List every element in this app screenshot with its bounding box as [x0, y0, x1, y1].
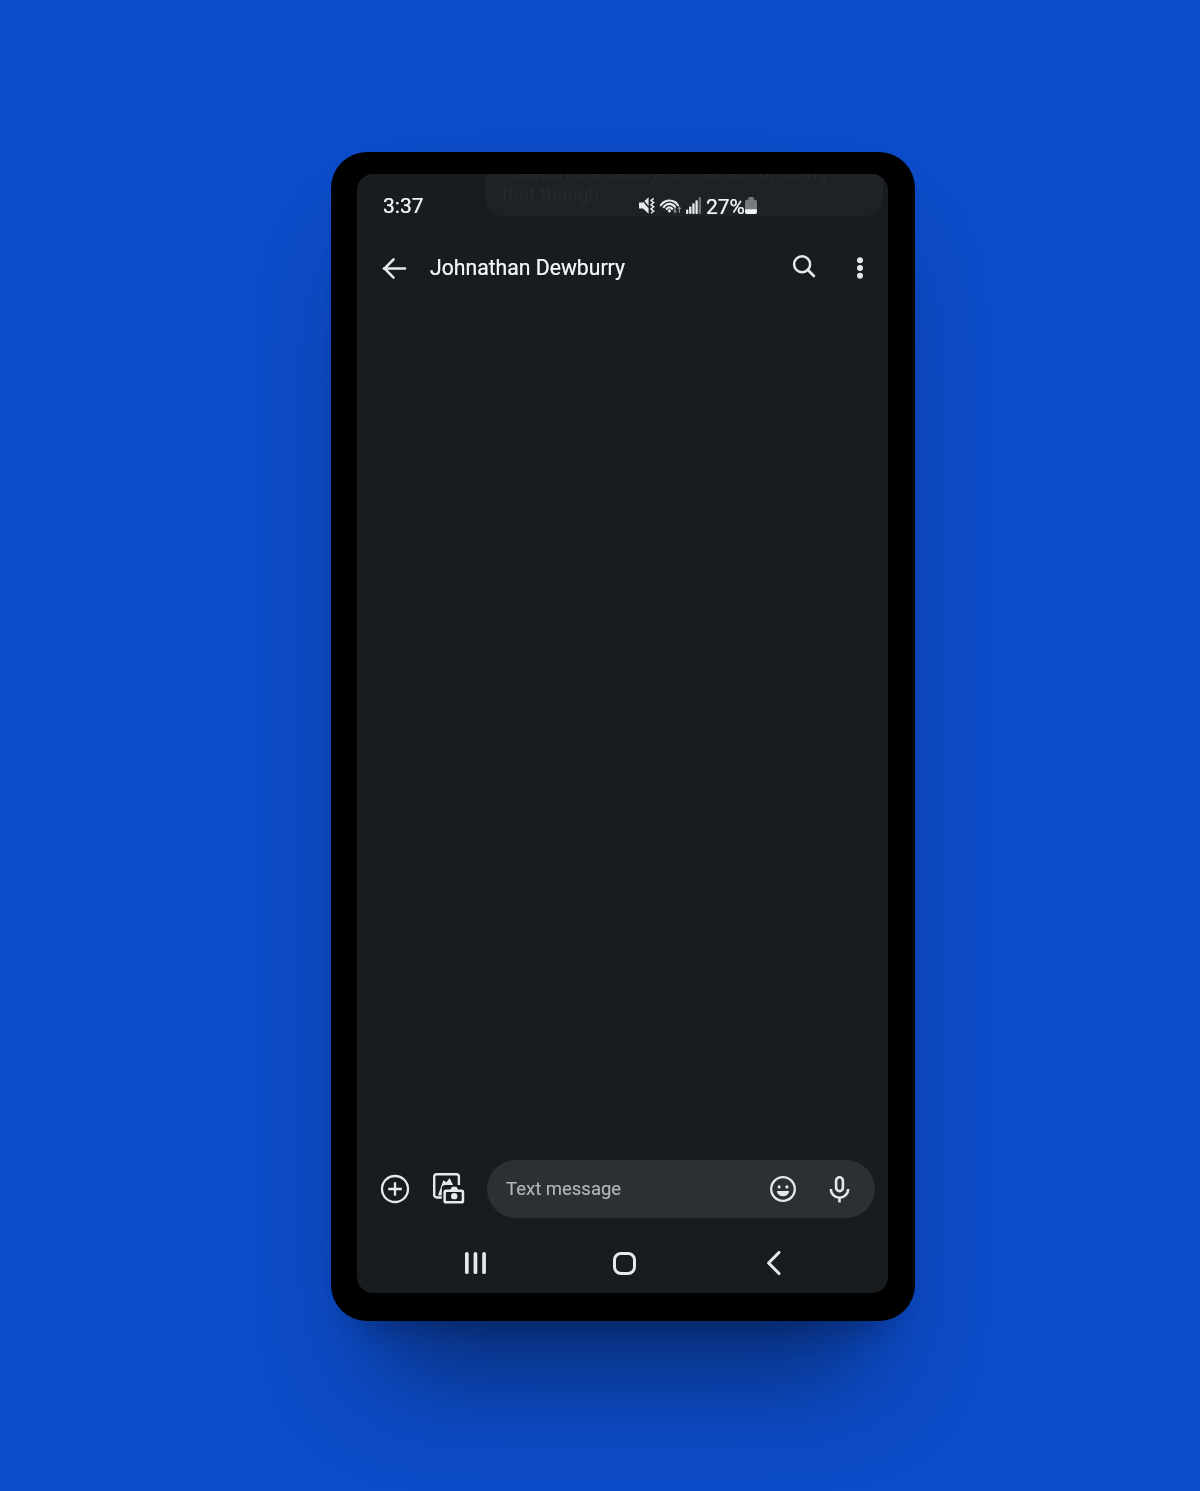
button[interactable]: Search: [780, 244, 828, 292]
button[interactable]: Recent apps: [443, 1237, 507, 1289]
staticText: Johnathan Dewburry: [430, 255, 625, 280]
button[interactable]: Back: [370, 244, 418, 292]
button[interactable]: More options: [836, 244, 884, 292]
staticText: I haven't checked yet! Thanks for doing …: [502, 174, 864, 206]
staticText: 27%: [706, 195, 745, 220]
button[interactable]: Home: [592, 1237, 656, 1289]
button[interactable]: Back: [741, 1237, 805, 1289]
button[interactable]: Text message: [487, 1160, 875, 1218]
button[interactable]: Add attachment: [371, 1165, 419, 1213]
button[interactable]: Emoji: [761, 1167, 805, 1211]
staticText: Text message: [506, 1178, 622, 1200]
button[interactable]: Voice message: [817, 1167, 861, 1211]
button[interactable]: Attach photo: [425, 1165, 473, 1213]
button[interactable]: Johnathan Dewburry: [419, 240, 767, 296]
staticText: 3:37: [383, 194, 424, 219]
